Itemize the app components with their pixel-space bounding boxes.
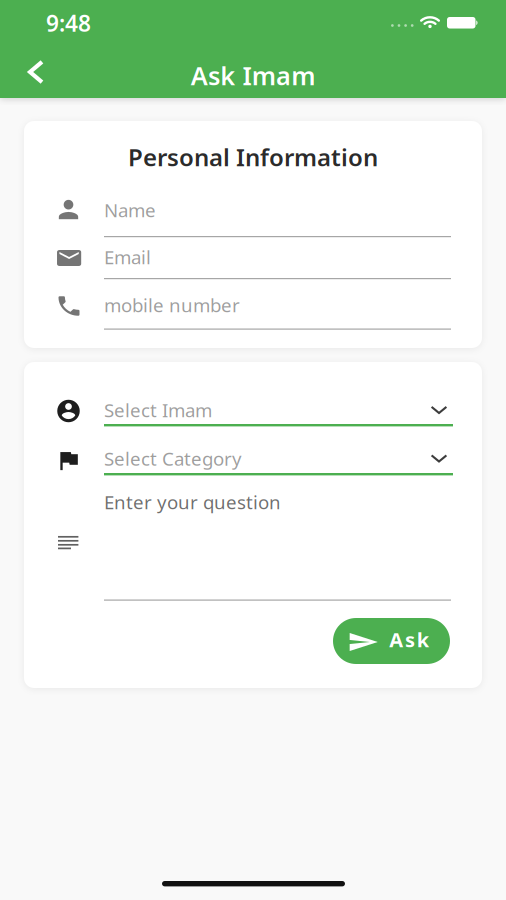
button[interactable]: Back: [15, 53, 55, 91]
button[interactable]: Select Imam: [58, 398, 462, 434]
staticText: Personal Information: [128, 141, 378, 173]
staticText: Ask: [389, 626, 429, 653]
staticText: Select Imam: [104, 397, 212, 422]
staticText: Email: [104, 244, 151, 269]
staticText: 9:48: [46, 8, 91, 38]
staticText: mobile number: [104, 292, 240, 317]
staticText: Name: [104, 197, 156, 222]
staticText: Select Category: [104, 446, 242, 471]
staticText: Enter your question: [104, 489, 281, 514]
staticText: Ask Imam: [191, 58, 315, 92]
button[interactable]: Select Category: [58, 447, 462, 486]
button[interactable]: Ask: [333, 618, 450, 664]
